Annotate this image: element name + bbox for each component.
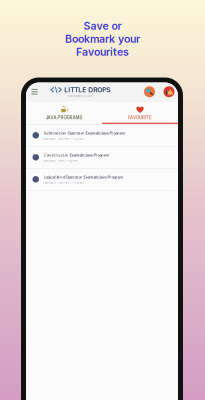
staticText: Logical And Operator Example Java Progra… xyxy=(43,174,123,180)
staticText: Constructor Example Java Program xyxy=(43,152,109,158)
button[interactable]: Search xyxy=(144,86,155,97)
button[interactable]: Subtraction Operator Example Java Progra… xyxy=(26,125,178,147)
staticText: Save or xyxy=(83,20,121,32)
button[interactable]: Logical And Operator Example Java Progra… xyxy=(26,169,178,191)
button[interactable]: Menu xyxy=(28,82,41,101)
staticText: Favourites xyxy=(76,46,129,58)
staticText: Bookmark your xyxy=(65,33,140,45)
button[interactable]: FAVOURITE xyxy=(102,101,178,124)
staticText: FAVOURITE xyxy=(128,115,152,120)
staticText: Java Basics - Operator Programs xyxy=(43,137,83,140)
staticText: Java Basics - Basic Programs xyxy=(43,159,77,162)
button[interactable]: Like xyxy=(163,86,174,97)
staticText: Subtraction Operator Example Java Progra… xyxy=(43,130,125,136)
staticText: www.javadrops.com xyxy=(68,94,93,98)
staticText: Java Basics - Operator Programs xyxy=(43,181,83,184)
staticText: LITTLE DROPS xyxy=(64,86,110,94)
button[interactable]: JAVA PROGRAMS xyxy=(26,101,102,124)
staticText: JAVA PROGRAMS xyxy=(45,115,82,120)
button[interactable]: Constructor Example Java Program xyxy=(26,147,178,169)
